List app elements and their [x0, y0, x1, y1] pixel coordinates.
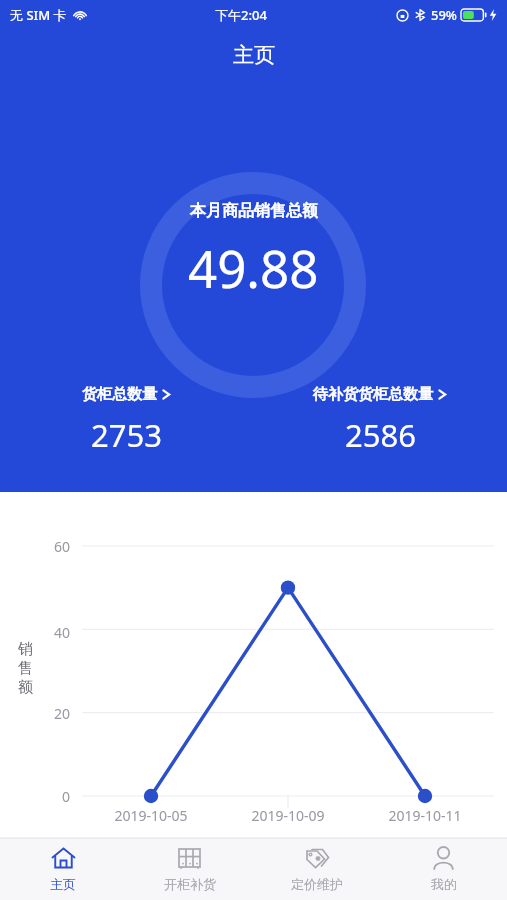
staticText: 无 SIM 卡: [10, 6, 67, 24]
staticText: 主页: [50, 876, 76, 892]
other: 定价维护: [304, 846, 329, 871]
staticText: 定价维护: [291, 876, 343, 892]
button[interactable]: 待补货货柜总数量: [253, 383, 507, 458]
staticText: 开柜补货: [164, 876, 216, 892]
staticText: 销: [18, 640, 33, 659]
button[interactable]: 主页: [0, 838, 126, 900]
button[interactable]: 开柜补货: [126, 838, 253, 900]
staticText: 2019-10-11: [388, 806, 462, 825]
other: 主页: [51, 846, 76, 871]
staticText: 下午2:04: [215, 6, 267, 24]
button[interactable]: 我的: [380, 838, 507, 900]
staticText: 售: [18, 659, 33, 678]
button[interactable]: 定价维护: [253, 838, 380, 900]
staticText: 60: [0, 537, 70, 556]
staticText: 49.88: [188, 233, 319, 302]
other: 开柜补货: [177, 846, 202, 871]
button[interactable]: 货柜总数量: [0, 383, 253, 458]
staticText: 40: [0, 623, 70, 642]
staticText: 2019-10-05: [114, 806, 188, 825]
staticText: 我的: [431, 876, 457, 892]
staticText: 2019-10-09: [251, 806, 325, 825]
staticText: 0: [0, 787, 70, 806]
staticText: 59%: [431, 6, 457, 24]
staticText: 本月商品销售总额: [190, 201, 318, 221]
staticText: 20: [0, 704, 70, 723]
other: 我的: [431, 846, 456, 871]
staticText: 待补货货柜总数量: [313, 385, 433, 404]
staticText: 货柜总数量: [82, 385, 157, 404]
staticText: 2586: [345, 414, 416, 456]
staticText: 2753: [91, 414, 162, 456]
staticText: 额: [18, 678, 33, 697]
staticText: 主页: [233, 42, 275, 68]
